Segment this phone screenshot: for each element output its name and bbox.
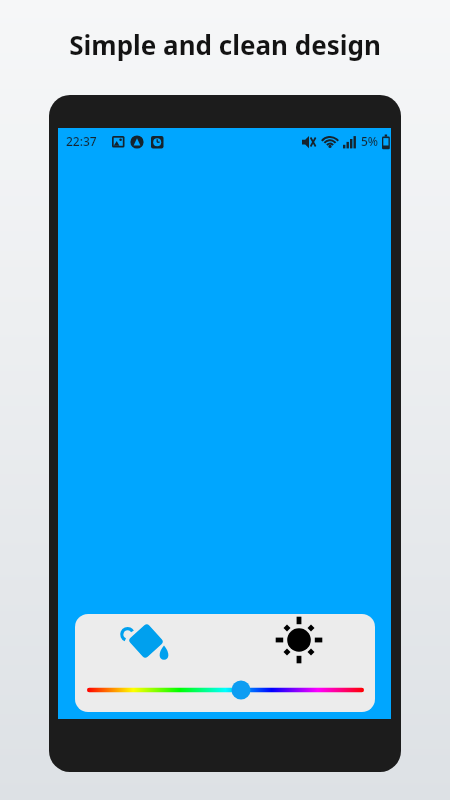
- staticText: 5%: [361, 133, 379, 149]
- button[interactable]: Brightness: [262, 616, 336, 670]
- button[interactable]: Hue slider: [78, 673, 372, 709]
- staticText: 22:37: [66, 133, 97, 149]
- staticText: Simple and clean design: [69, 27, 381, 62]
- button[interactable]: Choose color: [108, 616, 182, 670]
